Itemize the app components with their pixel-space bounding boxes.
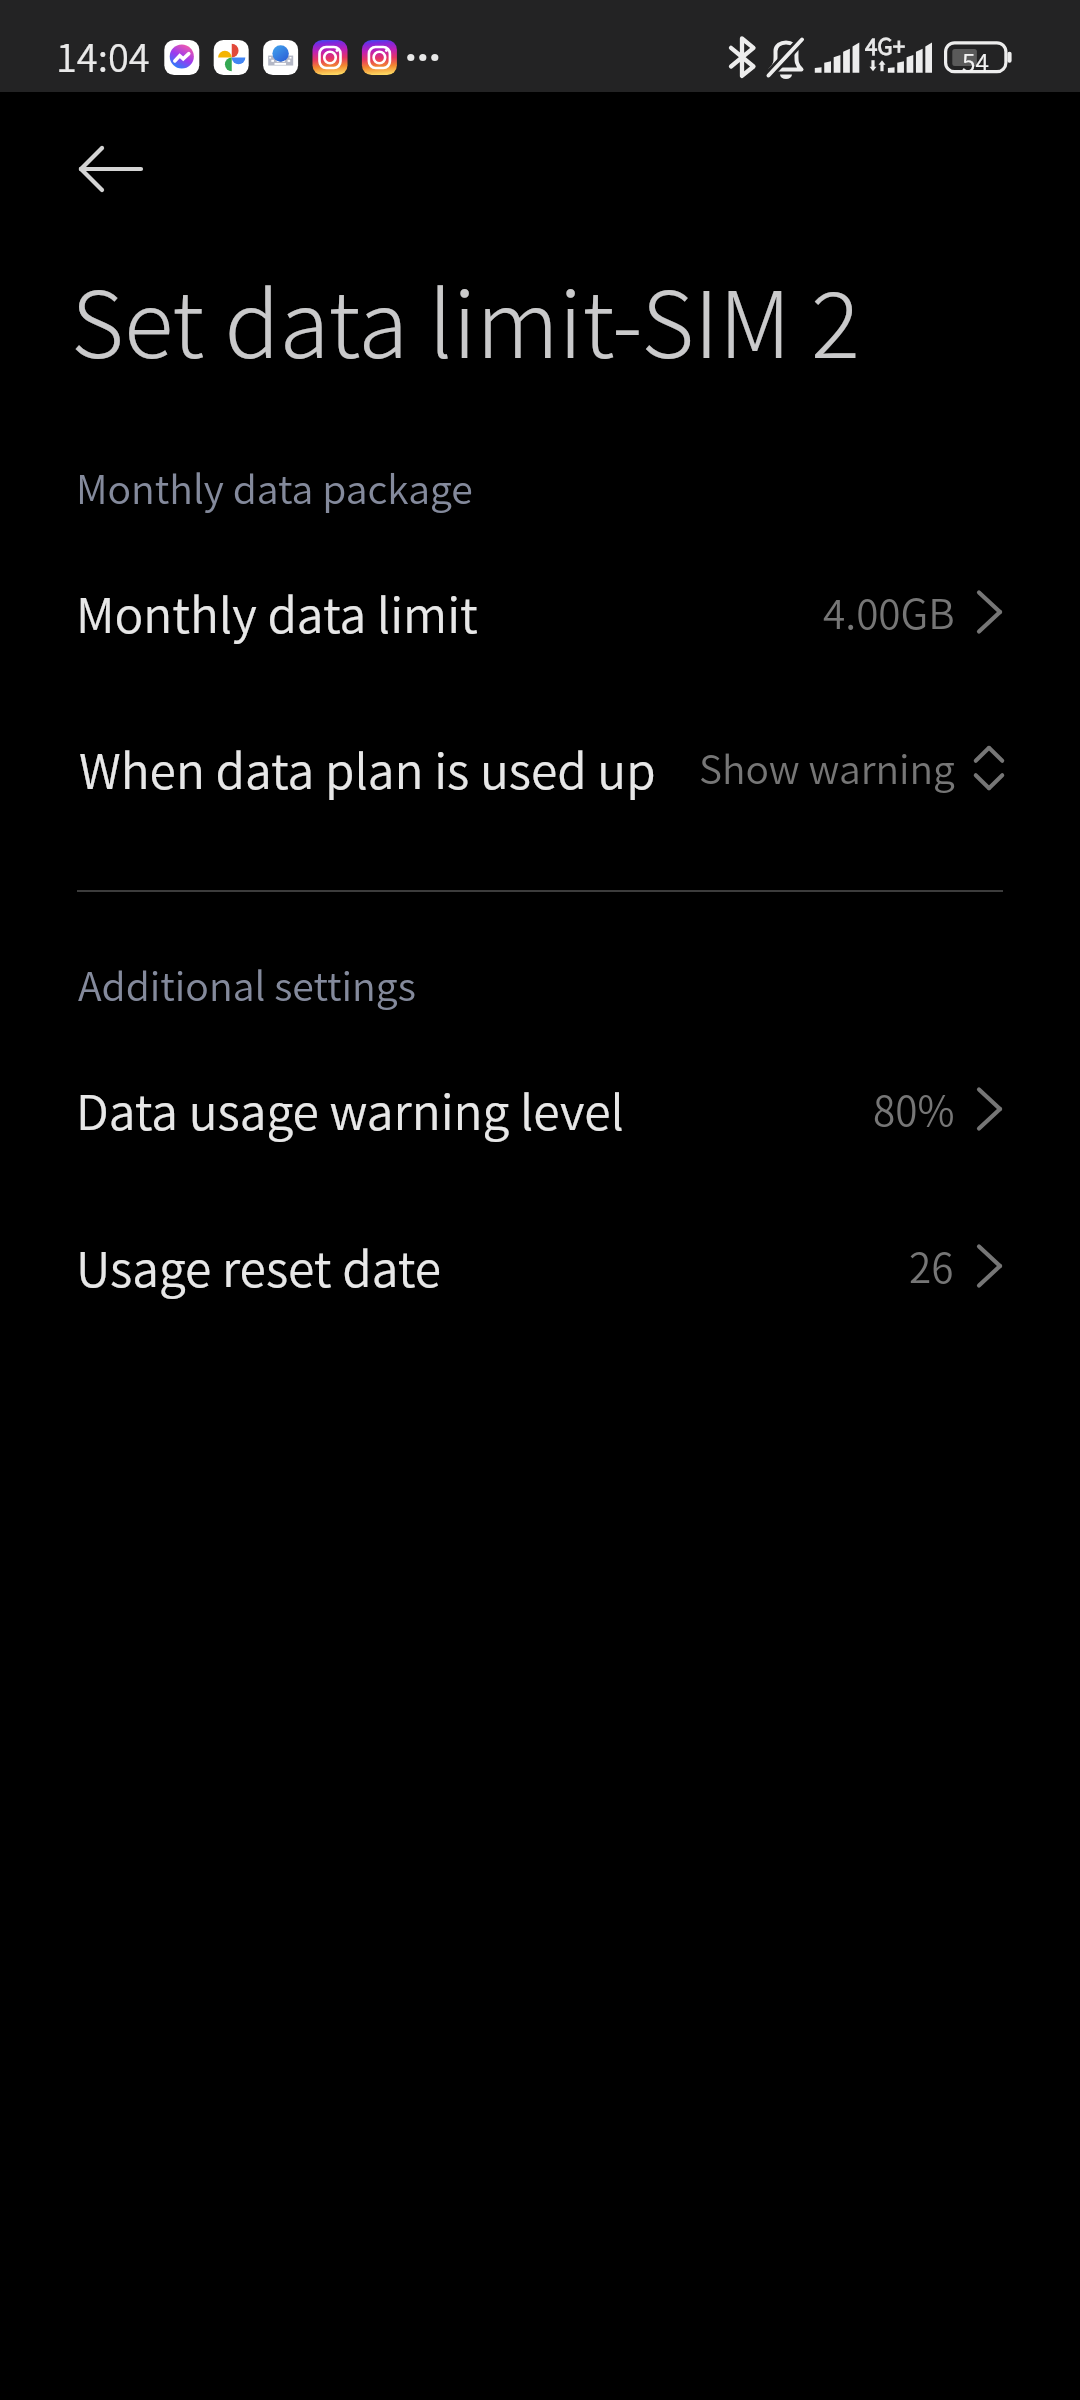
button[interactable]: Usage reset date (0, 1188, 1080, 1344)
button[interactable]: Data usage warning level (0, 1031, 1080, 1187)
staticText: 4.00GB (823, 582, 955, 641)
button[interactable]: Navigate up (61, 119, 161, 219)
staticText: Set data limit-SIM 2 (71, 252, 860, 384)
staticText: 80% (873, 1079, 955, 1138)
staticText: Show warning (699, 739, 955, 795)
staticText: 26 (909, 1236, 954, 1295)
staticText: 4G+ (865, 29, 906, 62)
staticText: Monthly data package (76, 459, 473, 516)
button[interactable]: Monthly data limit (0, 534, 1080, 690)
button[interactable]: When data plan is used up (0, 690, 1080, 846)
staticText: Monthly data limit (76, 577, 478, 646)
staticText: Usage reset date (76, 1231, 441, 1300)
staticText: Data usage warning level (76, 1074, 624, 1143)
staticText: When data plan is used up (79, 733, 656, 802)
staticText: 54 (962, 44, 989, 79)
staticText: 14:04 (56, 28, 150, 83)
staticText: Additional settings (78, 956, 416, 1013)
